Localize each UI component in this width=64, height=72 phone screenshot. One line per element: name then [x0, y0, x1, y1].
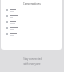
button[interactable] [1, 25, 62, 31]
button[interactable] [1, 31, 62, 37]
button[interactable] [1, 13, 62, 19]
staticText: Stay connected [23, 57, 42, 61]
button[interactable] [1, 7, 62, 13]
button[interactable] [1, 19, 62, 25]
staticText: Conversations [23, 2, 41, 6]
staticText: with everyone [23, 62, 41, 66]
